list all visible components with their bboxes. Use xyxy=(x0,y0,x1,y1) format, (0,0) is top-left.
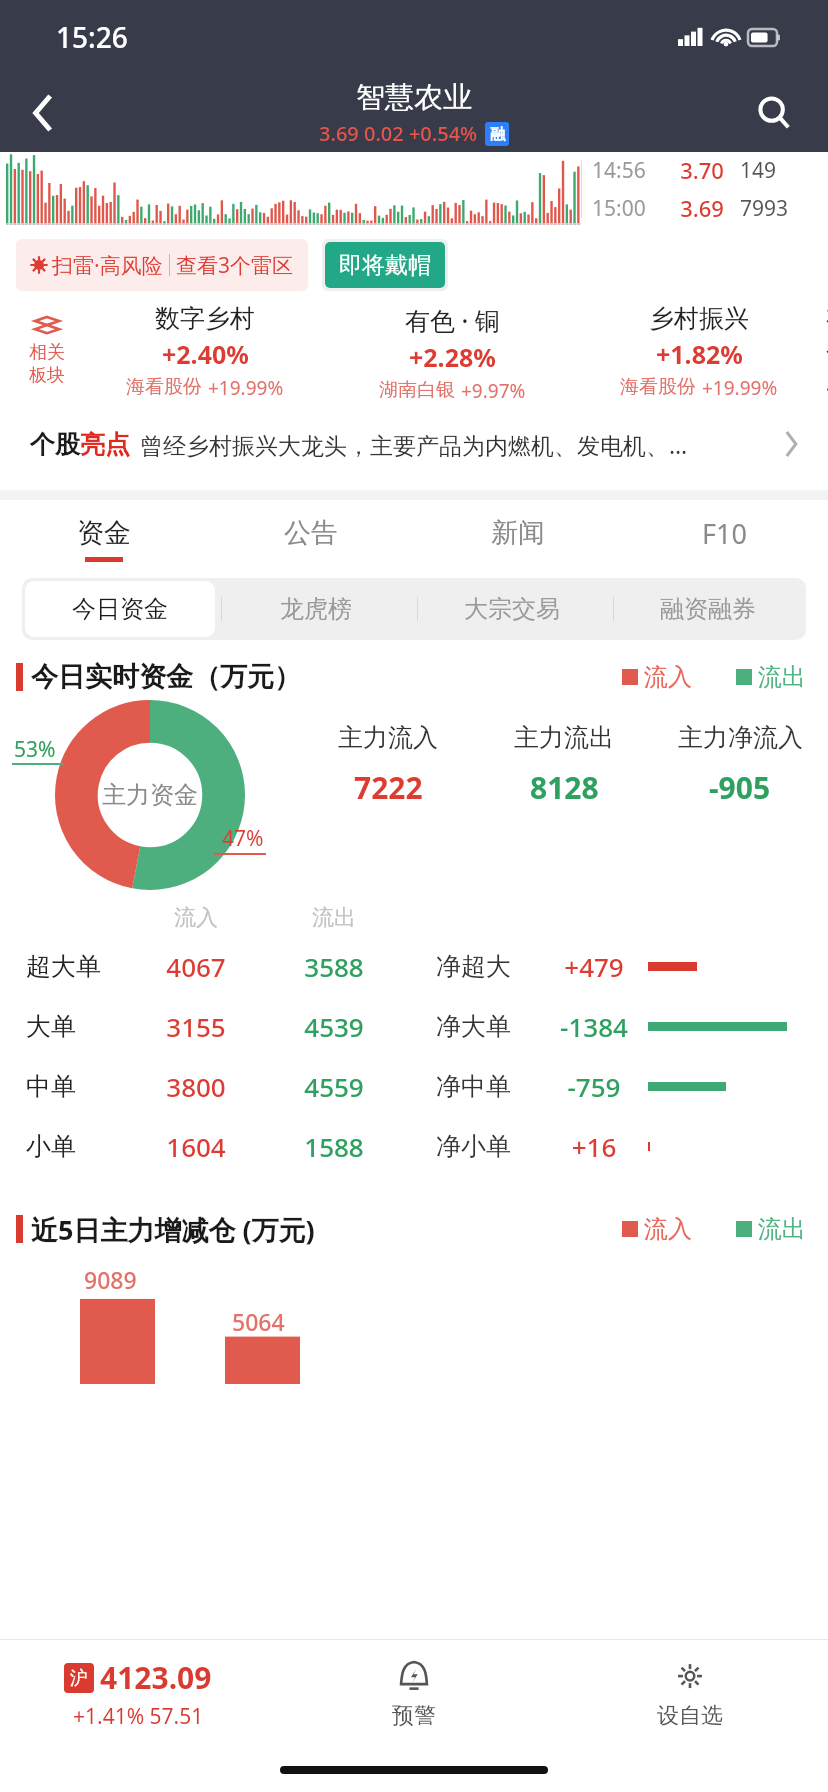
staticText: 板块 xyxy=(29,364,65,387)
staticText: 5064 xyxy=(232,1306,285,1337)
button[interactable]: Back xyxy=(16,85,72,141)
staticText: 53% xyxy=(14,735,56,764)
button[interactable]: 融资融券 xyxy=(613,581,803,637)
staticText: +1.41% 57.51 xyxy=(73,1702,204,1731)
button[interactable]: 资金 xyxy=(0,500,207,578)
button[interactable]: 设自选 xyxy=(552,1640,828,1748)
staticText: +479 xyxy=(546,949,642,984)
button[interactable]: 沪 xyxy=(0,1640,276,1748)
staticText: -759 xyxy=(546,1069,642,1104)
staticText: 流出 xyxy=(758,662,806,692)
staticText: -905 xyxy=(709,767,771,808)
staticText: 3588 xyxy=(274,949,394,984)
staticText: F10 xyxy=(702,515,747,552)
staticText: 乡村振兴 xyxy=(649,303,749,334)
staticText: 47% xyxy=(222,824,264,853)
staticText: +1.82% xyxy=(656,337,743,371)
staticText: 今日资金 xyxy=(72,594,168,624)
staticText: 1604 xyxy=(136,1129,256,1164)
staticText: 中单 xyxy=(26,1071,136,1102)
staticText: 设自选 xyxy=(657,1702,723,1730)
staticText: 净大单 xyxy=(436,1011,546,1042)
staticText: 流入 xyxy=(136,904,256,932)
staticText: 净中单 xyxy=(436,1071,546,1102)
staticText: 9089 xyxy=(84,1264,137,1295)
staticText: 流出 xyxy=(274,904,394,932)
staticText: 智慧农业 xyxy=(356,79,472,116)
button[interactable]: 预警 xyxy=(276,1640,552,1748)
staticText: 即将戴帽 xyxy=(339,251,431,280)
staticText: 流入 xyxy=(644,662,692,692)
staticText: +16 xyxy=(546,1129,642,1164)
staticText: 3.69 xyxy=(664,193,740,223)
staticText: +9.97% xyxy=(461,378,526,398)
staticText: 4123.09 xyxy=(100,1657,212,1698)
staticText: 8128 xyxy=(530,767,599,808)
staticText: +19.99% xyxy=(702,375,778,398)
staticText: 亮点 xyxy=(80,429,130,460)
staticText: 有色 · 铜 xyxy=(405,303,500,337)
staticText: 7222 xyxy=(354,767,423,808)
button[interactable]: 个股 xyxy=(16,410,812,478)
staticText: +2.28% xyxy=(409,340,496,374)
button[interactable]: 扫雷·高风险 xyxy=(16,239,308,291)
staticText: 净小单 xyxy=(436,1131,546,1162)
staticText: +19.99% xyxy=(208,375,284,398)
staticText: 主力流出 xyxy=(514,722,614,753)
staticText: 预警 xyxy=(392,1702,436,1730)
staticText: 资金 xyxy=(77,516,131,550)
staticText: 龙虎榜 xyxy=(280,594,352,624)
staticText: 个股 xyxy=(30,429,80,460)
button[interactable]: Search xyxy=(746,85,802,141)
staticText: 海看股份 xyxy=(620,375,696,398)
staticText: 相关 xyxy=(29,341,65,364)
button[interactable]: 大宗交易 xyxy=(417,581,607,637)
staticText: 流入 xyxy=(644,1214,692,1244)
staticText: 15:00 xyxy=(592,194,664,223)
button[interactable]: 相关 xyxy=(16,303,78,398)
button[interactable]: 龙虎榜 xyxy=(221,581,411,637)
staticText: 新闻 xyxy=(491,516,545,550)
staticText: 4559 xyxy=(274,1069,394,1104)
staticText: 14:56 xyxy=(592,156,664,185)
button[interactable]: 即将戴帽 xyxy=(322,239,448,291)
staticText: 净超大 xyxy=(436,951,546,982)
button[interactable]: 公告 xyxy=(207,500,414,578)
button[interactable]: 新闻 xyxy=(414,500,621,578)
staticText: 海看股份 xyxy=(126,375,202,398)
staticText: 大单 xyxy=(26,1011,136,1042)
staticText: 主力资金 xyxy=(102,780,198,810)
staticText: 湖南白银 xyxy=(379,378,455,398)
staticText: 3.69 0.02 +0.54% xyxy=(319,120,478,147)
staticText: 3155 xyxy=(136,1009,256,1044)
staticText: 小单 xyxy=(26,1131,136,1162)
button[interactable]: F10 xyxy=(621,500,828,578)
staticText: 3.70 xyxy=(664,155,740,185)
staticText: 主力净流入 xyxy=(678,722,803,753)
staticText: 3800 xyxy=(136,1069,256,1104)
staticText: 主力流入 xyxy=(338,722,438,753)
staticText: 大宗交易 xyxy=(464,594,560,624)
staticText: 有色 xyxy=(826,303,828,369)
staticText: +1 xyxy=(826,372,828,398)
staticText: 15:26 xyxy=(56,18,128,56)
staticText: 公告 xyxy=(284,516,338,550)
staticText: 7993 xyxy=(740,194,828,223)
staticText: 融资融券 xyxy=(660,594,756,624)
button[interactable]: 今日资金 xyxy=(25,581,215,637)
staticText: 数字乡村 xyxy=(155,303,255,334)
staticText: 超大单 xyxy=(26,951,136,982)
staticText: 4539 xyxy=(274,1009,394,1044)
staticText: 近5日主力增减仓 (万元) xyxy=(31,1211,315,1248)
staticText: 曾经乡村振兴大龙头，主要产品为内燃机、发电机、… xyxy=(140,429,784,460)
button[interactable]: 乡村振兴 xyxy=(579,303,819,398)
button[interactable]: 有色 xyxy=(826,303,828,398)
button[interactable]: 有色 · 铜 xyxy=(332,303,572,398)
staticText: 扫雷·高风险 xyxy=(52,251,163,280)
staticText: 查看3个雷区 xyxy=(176,251,294,280)
staticText: +2.40% xyxy=(162,337,249,371)
staticText: 流出 xyxy=(758,1214,806,1244)
staticText: 1588 xyxy=(274,1129,394,1164)
staticText: -1384 xyxy=(546,1009,642,1044)
button[interactable]: 数字乡村 xyxy=(85,303,325,398)
